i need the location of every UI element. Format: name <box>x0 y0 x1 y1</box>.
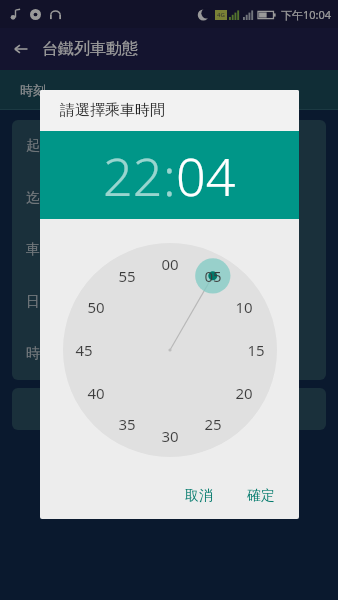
button[interactable]: Minute clock face <box>63 243 277 457</box>
button[interactable]: 00 <box>161 254 179 274</box>
staticText: 40 <box>87 383 105 403</box>
button[interactable]: 25 <box>204 414 222 434</box>
button[interactable]: 取消 <box>175 481 223 511</box>
staticText: 04 <box>176 140 236 211</box>
button[interactable]: 04 <box>176 140 236 211</box>
button[interactable]: Back <box>0 28 42 70</box>
staticText: 取消 <box>185 487 213 505</box>
staticText: 45 <box>75 340 93 360</box>
staticText: 00 <box>161 254 179 274</box>
staticText: 下午10:04 <box>281 7 332 22</box>
staticText: 55 <box>118 266 136 286</box>
staticText: 15 <box>247 340 265 360</box>
staticText: 台鐵列車動態 <box>42 39 138 59</box>
button[interactable]: 40 <box>87 383 105 403</box>
staticText: : <box>163 140 176 211</box>
button[interactable] <box>12 388 326 430</box>
staticText: 50 <box>87 297 105 317</box>
staticText: 35 <box>118 414 136 434</box>
staticText: 車種 <box>26 241 54 259</box>
button[interactable]: 50 <box>87 297 105 317</box>
button[interactable]: 55 <box>118 266 136 286</box>
staticText: 05 <box>204 266 222 286</box>
button[interactable]: 時間 <box>12 328 326 380</box>
staticText: 25 <box>204 414 222 434</box>
button[interactable]: 10 <box>235 297 253 317</box>
button[interactable]: 確定 <box>237 481 285 511</box>
button[interactable]: 30 <box>161 426 179 446</box>
staticText: 確定 <box>247 487 275 505</box>
staticText: 請選擇乘車時間 <box>60 101 165 120</box>
staticText: 時間 <box>26 345 54 363</box>
button[interactable]: 15 <box>247 340 265 360</box>
staticText: 迄站 <box>26 189 54 207</box>
staticText: 起站 <box>26 137 54 155</box>
staticText: 22 <box>103 140 163 211</box>
button[interactable]: 起站 <box>12 120 326 172</box>
staticText: 30 <box>161 426 179 446</box>
button[interactable]: 日期 <box>12 276 326 328</box>
button[interactable]: 35 <box>118 414 136 434</box>
staticText: 20 <box>235 383 253 403</box>
staticText: 10 <box>235 297 253 317</box>
staticText: 日期 <box>26 293 54 311</box>
button[interactable]: 20 <box>235 383 253 403</box>
staticText: 4G <box>217 11 225 19</box>
button[interactable]: 45 <box>75 340 93 360</box>
staticText: 時刻 <box>20 82 46 98</box>
button[interactable]: 05 <box>204 266 222 286</box>
button[interactable]: 車種 <box>12 224 326 276</box>
button[interactable]: 迄站 <box>12 172 326 224</box>
button[interactable]: 22 <box>103 140 163 211</box>
